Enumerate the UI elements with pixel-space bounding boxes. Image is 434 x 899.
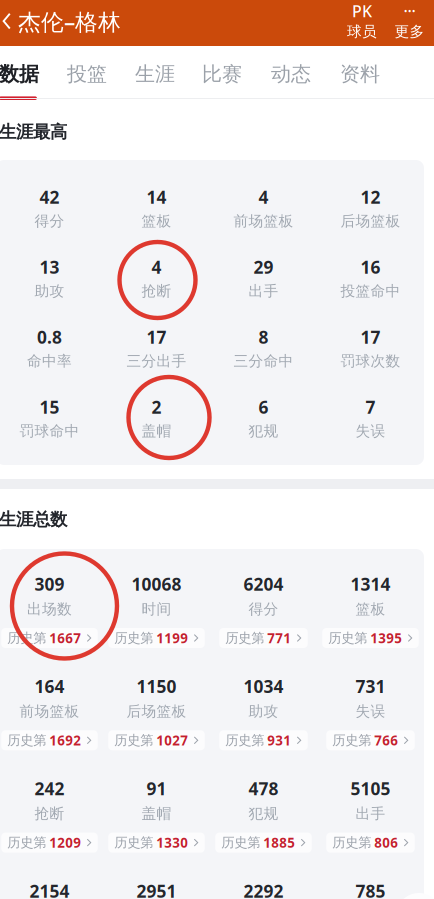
staticText: 1150 xyxy=(136,675,176,698)
staticText: 309 xyxy=(34,572,64,595)
staticText: 29 xyxy=(253,255,273,278)
staticText: 失误 xyxy=(355,702,385,720)
staticText: 前场篮板 xyxy=(233,212,293,230)
staticText: 1314 xyxy=(350,572,390,595)
button[interactable]: 历史第 xyxy=(1,730,98,750)
staticText: 2951 xyxy=(136,879,176,899)
staticText: 4 xyxy=(151,255,161,278)
button[interactable]: 历史第 xyxy=(219,628,308,648)
staticText: 助攻 xyxy=(34,282,64,300)
button[interactable]: ··· xyxy=(386,0,432,43)
staticText: 2154 xyxy=(29,879,69,899)
staticText: 得分 xyxy=(34,212,64,230)
staticText: 抢断 xyxy=(141,282,171,300)
staticText: 犯规 xyxy=(248,805,278,823)
staticText: 投篮命中 xyxy=(340,282,400,300)
staticText: 生涯 xyxy=(135,62,175,86)
staticText: 1330 xyxy=(156,834,188,851)
staticText: 抢断 xyxy=(34,805,64,823)
staticText: 资料 xyxy=(340,62,380,86)
staticText: 13 xyxy=(39,255,59,278)
staticText: 1209 xyxy=(49,834,81,851)
staticText: 杰伦–格林 xyxy=(18,6,121,36)
staticText: 42 xyxy=(39,185,59,208)
staticText: 1692 xyxy=(49,731,81,749)
staticText: 历史第 xyxy=(114,834,153,851)
button[interactable]: 历史第 xyxy=(1,833,98,853)
staticText: 91 xyxy=(146,777,166,800)
staticText: 犯规 xyxy=(248,422,278,440)
staticText: 历史第 xyxy=(225,630,264,646)
button[interactable]: 历史第 xyxy=(326,730,415,750)
staticText: 助攻 xyxy=(248,702,278,720)
staticText: 历史第 xyxy=(225,732,264,748)
button[interactable]: PK xyxy=(339,0,385,43)
button[interactable]: 历史第 xyxy=(108,730,205,750)
staticText: 历史第 xyxy=(7,834,46,851)
staticText: 478 xyxy=(248,777,278,800)
button[interactable]: 历史第 xyxy=(1,628,98,648)
staticText: 三分出手 xyxy=(126,352,186,370)
staticText: 出手 xyxy=(248,282,278,300)
staticText: 盖帽 xyxy=(141,422,171,440)
staticText: PK xyxy=(352,0,372,22)
staticText: 1667 xyxy=(49,629,81,647)
staticText: 历史第 xyxy=(7,732,46,748)
button[interactable]: 历史第 xyxy=(326,833,415,853)
staticText: 1199 xyxy=(156,629,188,647)
staticText: 2292 xyxy=(243,879,283,899)
staticText: 1034 xyxy=(243,675,283,698)
staticText: 164 xyxy=(34,675,64,698)
staticText: 得分 xyxy=(248,600,278,618)
staticText: 17 xyxy=(360,325,380,348)
staticText: 17 xyxy=(146,325,166,348)
staticText: 历史第 xyxy=(7,630,46,646)
staticText: 生涯总数 xyxy=(0,509,67,530)
button[interactable]: 比赛 xyxy=(191,49,253,99)
staticText: 历史第 xyxy=(328,630,367,646)
staticText: 球员 xyxy=(347,23,377,41)
staticText: 2 xyxy=(151,395,161,418)
button[interactable]: 历史第 xyxy=(108,833,205,853)
staticText: 命中率 xyxy=(27,352,72,370)
staticText: 6204 xyxy=(243,572,283,595)
staticText: 历史第 xyxy=(114,732,153,748)
staticText: 1395 xyxy=(370,629,402,647)
staticText: 篮板 xyxy=(141,212,171,230)
staticText: 历史第 xyxy=(221,834,260,851)
staticText: 三分命中 xyxy=(233,352,293,370)
staticText: 数据 xyxy=(0,62,39,86)
staticText: 4 xyxy=(258,185,268,208)
staticText: 罚球次数 xyxy=(340,352,400,370)
button[interactable]: 历史第 xyxy=(108,628,205,648)
button[interactable]: 杰伦–格林 xyxy=(0,0,121,46)
staticText: 0.8 xyxy=(37,325,62,348)
staticText: 篮板 xyxy=(355,600,385,618)
staticText: 时间 xyxy=(141,600,171,618)
staticText: 生涯最高 xyxy=(0,121,67,143)
staticText: 历史第 xyxy=(114,630,153,646)
button[interactable]: 动态 xyxy=(260,49,322,99)
staticText: 242 xyxy=(34,777,64,800)
staticText: 15 xyxy=(39,395,59,418)
staticText: 771 xyxy=(267,629,291,647)
staticText: 罚球命中 xyxy=(19,422,79,440)
button[interactable]: 投篮 xyxy=(56,49,118,99)
staticText: 5105 xyxy=(350,777,390,800)
staticText: 766 xyxy=(374,731,398,749)
staticText: 后场篮板 xyxy=(340,212,400,230)
staticText: 失误 xyxy=(355,422,385,440)
staticText: 6 xyxy=(258,395,268,418)
button[interactable]: 数据 xyxy=(0,49,50,99)
button[interactable]: 资料 xyxy=(329,49,391,99)
button[interactable]: 历史第 xyxy=(215,833,312,853)
button[interactable]: 生涯 xyxy=(124,49,186,99)
staticText: 历史第 xyxy=(332,732,371,748)
staticText: 历史第 xyxy=(332,834,371,851)
button[interactable]: 历史第 xyxy=(219,730,308,750)
staticText: 1027 xyxy=(156,731,188,749)
staticText: 806 xyxy=(374,834,398,851)
staticText: 10068 xyxy=(131,572,181,595)
button[interactable]: 历史第 xyxy=(322,628,419,648)
staticText: ··· xyxy=(403,0,415,22)
